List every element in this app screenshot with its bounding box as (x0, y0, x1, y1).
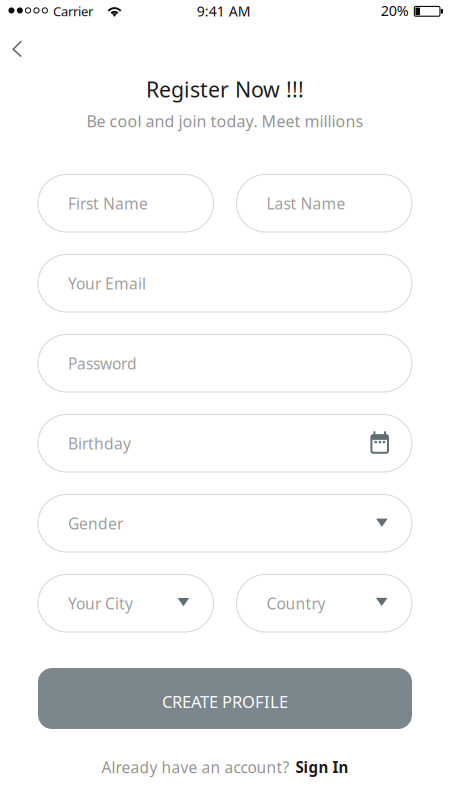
staticText: Already have an account? (101, 757, 289, 778)
button[interactable]: Sign In (295, 757, 348, 777)
staticText: Last Name (267, 193, 346, 214)
button[interactable]: Last Name (236, 174, 412, 232)
staticText: Country (267, 593, 326, 614)
button[interactable]: Your City (38, 574, 213, 632)
button[interactable]: Country (236, 574, 412, 632)
button[interactable]: Gender (38, 494, 412, 552)
staticText: Your Email (68, 273, 146, 294)
staticText: Gender (68, 513, 123, 534)
staticText: First Name (68, 193, 148, 214)
staticText: Password (68, 353, 137, 374)
button[interactable]: CREATE PROFILE (38, 668, 412, 729)
staticText: Sign In (295, 757, 348, 777)
staticText: Be cool and join today. Meet millions (86, 110, 363, 132)
staticText: 9:41 AM (197, 1, 251, 20)
button[interactable]: Back (0, 28, 40, 70)
button[interactable]: First Name (38, 174, 213, 232)
button[interactable]: Your Email (38, 254, 412, 312)
button[interactable]: Password (38, 334, 412, 392)
staticText: Birthday (68, 433, 131, 454)
staticText: Your City (68, 593, 133, 614)
button[interactable]: Birthday (38, 414, 412, 472)
staticText: Carrier (53, 2, 93, 20)
staticText: Register Now !!! (146, 75, 304, 104)
staticText: 20% (381, 1, 409, 20)
staticText: CREATE PROFILE (162, 690, 288, 713)
